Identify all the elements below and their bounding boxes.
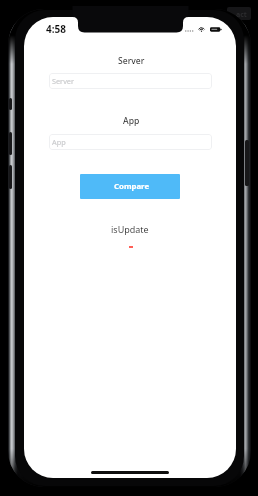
staticText: 4:58 [46,22,66,36]
button[interactable]: App [49,134,212,150]
other: Wi-Fi [198,26,205,33]
other: Cellular signal [185,26,194,33]
staticText: Server [118,55,145,67]
staticText: App [52,137,66,147]
staticText: App [123,115,140,127]
staticText: act [236,10,247,20]
button[interactable]: Server [49,73,212,89]
button[interactable]: Compare [80,174,180,199]
staticText: Server [52,76,74,86]
other: Battery [210,26,222,33]
staticText: isUpdate [111,223,149,235]
staticText: Compare [114,181,150,192]
